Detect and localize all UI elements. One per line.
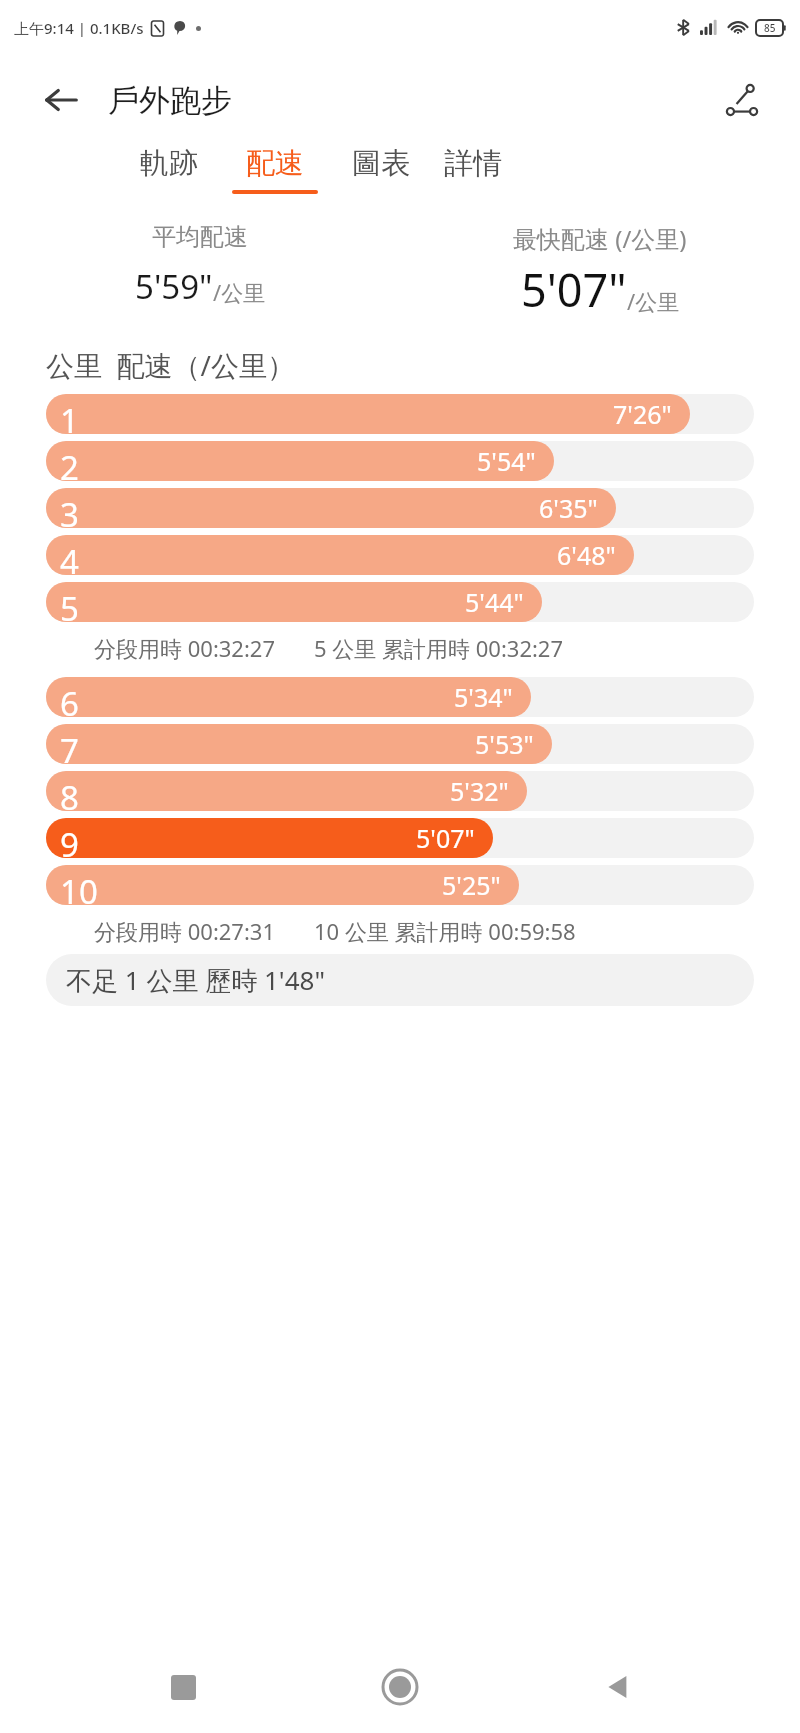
staticText: 5'53" (475, 727, 534, 761)
staticText: 85 (764, 21, 776, 35)
staticText: 平均配速 (152, 222, 248, 252)
staticText: 2 (60, 445, 79, 490)
button[interactable]: 6'48" (46, 531, 754, 578)
button[interactable]: Recent apps (148, 1652, 218, 1722)
button[interactable]: 7'26" (46, 390, 754, 437)
button[interactable]: 軌跡 (140, 145, 198, 194)
staticText: /公里 (213, 277, 266, 307)
staticText: 5'25" (442, 868, 501, 902)
staticText: 10 (60, 869, 98, 914)
staticText: 8 (60, 775, 79, 820)
button[interactable]: 5'53" (46, 720, 754, 767)
button[interactable]: 5'07" (46, 814, 754, 861)
button[interactable]: 圖表 (352, 145, 410, 194)
button[interactable]: 詳情 (444, 145, 502, 194)
button[interactable]: 不足 1 公里 歷時 1'48" (46, 954, 754, 1006)
staticText: 5'59" (135, 264, 213, 309)
staticText: 5'44" (465, 585, 524, 619)
staticText: 5 公里 累計用時 00:32:27 (314, 633, 564, 663)
staticText: 分段用時 00:32:27 (94, 633, 276, 663)
staticText: 戶外跑步 (108, 81, 232, 120)
staticText: 配速 (246, 145, 304, 182)
staticText: 最快配速 (/公里) (513, 222, 687, 255)
button[interactable]: 6'35" (46, 484, 754, 531)
staticText: 6 (60, 681, 79, 726)
staticText: 詳情 (444, 145, 502, 182)
staticText: 9 (60, 822, 79, 867)
staticText: 5'07" (416, 821, 475, 855)
staticText: 5'07" (521, 259, 627, 320)
staticText: 上午9:14 | 0.1KB/s (14, 18, 144, 38)
staticText: 3 (60, 492, 79, 537)
button[interactable]: 5'34" (46, 673, 754, 720)
staticText: 5'34" (454, 680, 513, 714)
staticText: 不足 1 公里 歷時 1'48" (66, 962, 325, 998)
staticText: 6'48" (557, 538, 616, 572)
button[interactable]: Share (714, 72, 770, 128)
button[interactable]: 配速 (232, 145, 318, 194)
staticText: 6'35" (539, 491, 598, 525)
button[interactable]: 5'25" (46, 861, 754, 908)
staticText: /公里 (627, 286, 680, 316)
staticText: 7 (60, 728, 79, 773)
button[interactable]: Home (365, 1652, 435, 1722)
button[interactable]: 5'44" (46, 578, 754, 625)
button[interactable]: Back (38, 77, 84, 123)
staticText: 7'26" (613, 397, 672, 431)
button[interactable]: Back (583, 1652, 653, 1722)
staticText: 5'54" (477, 444, 536, 478)
button[interactable]: 5'32" (46, 767, 754, 814)
staticText: 1 (60, 398, 79, 443)
staticText: 軌跡 (140, 145, 198, 182)
staticText: 10 公里 累計用時 00:59:58 (314, 916, 576, 946)
staticText: 圖表 (352, 145, 410, 182)
staticText: 5'32" (450, 774, 509, 808)
staticText: 分段用時 00:27:31 (94, 916, 276, 946)
staticText: 4 (60, 539, 79, 584)
staticText: 公里 配速（/公里） (46, 346, 295, 384)
button[interactable]: 5'54" (46, 437, 754, 484)
staticText: 5 (60, 586, 79, 631)
